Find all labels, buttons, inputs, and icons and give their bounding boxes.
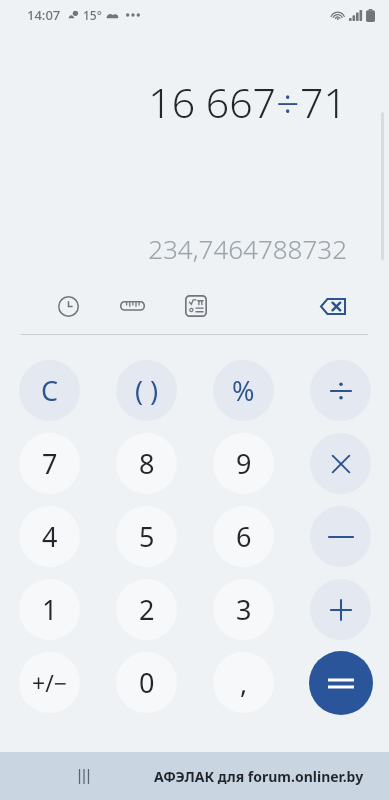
button[interactable] <box>310 433 371 494</box>
staticText: 71 <box>300 74 347 130</box>
staticText: ( ) <box>135 372 159 409</box>
button[interactable]: ( ) <box>116 360 177 421</box>
button[interactable]: Scientific calculator <box>172 282 220 330</box>
button[interactable]: , <box>213 652 274 713</box>
staticText: ÷ <box>276 74 300 130</box>
staticText: 14:07 <box>27 6 61 24</box>
button[interactable]: 6 <box>213 506 274 567</box>
staticText: 8 <box>139 445 155 482</box>
button[interactable]: 3 <box>213 579 274 640</box>
staticText: АФЭЛАК для forum.onliner.by <box>154 767 364 786</box>
button[interactable]: 1 <box>19 579 80 640</box>
button[interactable] <box>310 360 371 421</box>
button[interactable]: 4 <box>19 506 80 567</box>
staticText: 7 <box>42 445 58 482</box>
button[interactable]: 2 <box>116 579 177 640</box>
button[interactable]: C <box>19 360 80 421</box>
button[interactable]: History <box>44 282 92 330</box>
button[interactable]: 0 <box>116 652 177 713</box>
button[interactable]: +/− <box>19 652 80 713</box>
staticText: 0 <box>139 664 155 701</box>
button[interactable]: Unit converter <box>108 282 156 330</box>
button[interactable]: 8 <box>116 433 177 494</box>
staticText: 1 <box>42 591 58 628</box>
staticText: % <box>232 372 255 409</box>
staticText: 9 <box>236 445 252 482</box>
staticText: C <box>41 372 59 409</box>
staticText: 16 667 <box>148 74 276 130</box>
button[interactable]: % <box>213 360 274 421</box>
button[interactable]: 5 <box>116 506 177 567</box>
button[interactable]: 7 <box>19 433 80 494</box>
staticText: 5 <box>139 518 155 555</box>
staticText: 3 <box>236 591 252 628</box>
button[interactable]: 9 <box>213 433 274 494</box>
staticText: 2 <box>139 591 155 628</box>
button[interactable] <box>310 506 371 567</box>
staticText: , <box>240 664 248 701</box>
button[interactable] <box>310 579 371 640</box>
button[interactable] <box>309 651 373 715</box>
button[interactable]: Recents <box>64 756 104 796</box>
staticText: 4 <box>42 518 58 555</box>
staticText: 6 <box>236 518 252 555</box>
staticText: 234,7464788732 <box>148 231 347 266</box>
staticText: 15° <box>83 7 102 23</box>
staticText: +/− <box>32 667 67 698</box>
button[interactable]: Backspace <box>309 282 357 330</box>
